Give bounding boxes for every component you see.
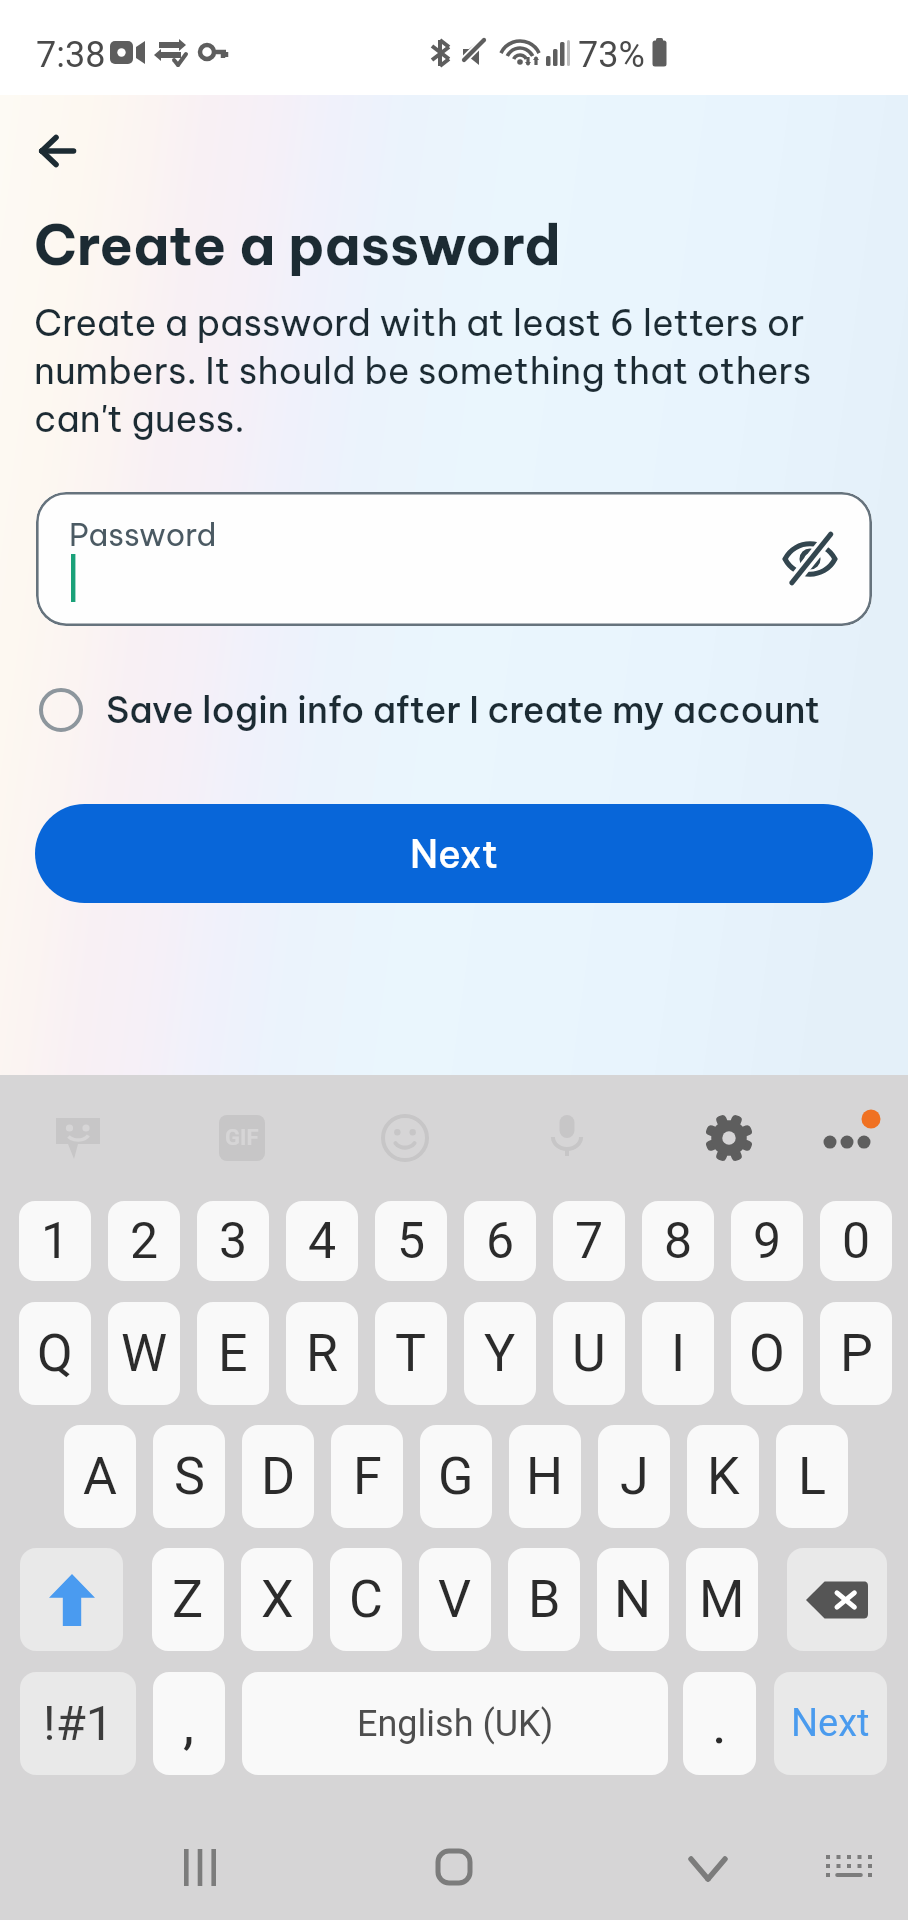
button[interactable]: P [820, 1302, 892, 1405]
button[interactable]: Stickers [44, 1104, 112, 1172]
button[interactable]: Emoji [371, 1104, 439, 1172]
button[interactable]: 5 [375, 1201, 447, 1281]
button[interactable]: 7 [553, 1201, 625, 1281]
button[interactable]: Recent apps [160, 1827, 240, 1907]
staticText: Create a password with at least 6 letter… [34, 299, 846, 442]
staticText: D [261, 1446, 296, 1507]
staticText: T [395, 1323, 427, 1384]
staticText: 0 [842, 1212, 871, 1271]
button[interactable]: !#1 [20, 1672, 136, 1775]
button[interactable]: I [642, 1302, 714, 1405]
staticText: Save login info after I create my accoun… [106, 687, 821, 733]
staticText: 2 [130, 1212, 159, 1271]
button[interactable]: 8 [642, 1201, 714, 1281]
staticText: 4 [308, 1212, 337, 1271]
staticText: Next [410, 830, 499, 878]
staticText: , [183, 1691, 195, 1757]
button[interactable]: Save login info after I create my accoun… [0, 676, 908, 744]
button[interactable]: 4 [286, 1201, 358, 1281]
button[interactable]: F [331, 1425, 403, 1528]
staticText: English (UK) [357, 1703, 554, 1745]
button[interactable]: T [375, 1302, 447, 1405]
button[interactable]: Y [464, 1302, 536, 1405]
staticText: L [798, 1446, 827, 1507]
button[interactable]: English (UK) [242, 1672, 668, 1775]
button[interactable]: Z [152, 1548, 224, 1651]
button[interactable]: V [419, 1548, 491, 1651]
button[interactable]: More options [812, 1104, 880, 1172]
button[interactable]: A [64, 1425, 136, 1528]
staticText: H [526, 1446, 564, 1507]
staticText: Next [791, 1701, 870, 1746]
button[interactable]: 2 [108, 1201, 180, 1281]
button[interactable]: H [509, 1425, 581, 1528]
button[interactable]: Voice input [533, 1104, 601, 1172]
button[interactable]: G [420, 1425, 492, 1528]
staticText: J [620, 1446, 649, 1507]
staticText: 1 [41, 1212, 70, 1271]
button[interactable]: 9 [731, 1201, 803, 1281]
button[interactable]: J [598, 1425, 670, 1528]
button[interactable]: Show password [774, 523, 846, 595]
staticText: R [306, 1323, 339, 1384]
button[interactable]: Next [774, 1672, 887, 1775]
staticText: Z [172, 1569, 204, 1630]
staticText: U [572, 1323, 606, 1384]
staticText: Y [484, 1323, 516, 1384]
staticText: S [174, 1446, 205, 1507]
staticText: 6 [486, 1212, 515, 1271]
button[interactable]: S [153, 1425, 225, 1528]
staticText: N [614, 1569, 652, 1630]
staticText: X [261, 1569, 294, 1630]
staticText: O [749, 1323, 785, 1384]
staticText: Password [69, 515, 217, 554]
button[interactable]: O [731, 1302, 803, 1405]
button[interactable]: Next [35, 804, 873, 903]
button[interactable]: D [242, 1425, 314, 1528]
button[interactable]: 1 [19, 1201, 91, 1281]
button[interactable]: Q [19, 1302, 91, 1405]
staticText: A [83, 1446, 117, 1507]
button[interactable]: X [241, 1548, 313, 1651]
staticText: 7 [575, 1212, 604, 1271]
staticText: Create a password [34, 210, 561, 280]
staticText: 7:38 [36, 34, 106, 76]
button[interactable]: 3 [197, 1201, 269, 1281]
button[interactable]: 6 [464, 1201, 536, 1281]
button[interactable]: . [683, 1672, 756, 1775]
staticText: !#1 [43, 1695, 114, 1752]
button[interactable]: Password [36, 492, 872, 626]
staticText: B [528, 1569, 561, 1630]
button[interactable]: E [197, 1302, 269, 1405]
staticText: Q [37, 1323, 73, 1384]
button[interactable]: C [330, 1548, 402, 1651]
button[interactable]: M [686, 1548, 758, 1651]
staticText: 73% [578, 34, 645, 76]
staticText: P [840, 1323, 873, 1384]
button[interactable]: R [286, 1302, 358, 1405]
staticText: 3 [219, 1212, 248, 1271]
button[interactable]: K [687, 1425, 759, 1528]
button[interactable]: Home [414, 1827, 494, 1907]
button[interactable]: Backspace [787, 1548, 887, 1651]
button[interactable]: Back [22, 116, 92, 186]
button[interactable]: W [108, 1302, 180, 1405]
button[interactable]: N [597, 1548, 669, 1651]
staticText: C [349, 1569, 383, 1630]
button[interactable]: Keyboard settings [695, 1104, 763, 1172]
staticText: GIF [225, 1125, 259, 1151]
button[interactable]: 0 [820, 1201, 892, 1281]
staticText: F [353, 1446, 382, 1507]
staticText: E [218, 1323, 248, 1384]
staticText: . [712, 1691, 727, 1757]
button[interactable]: , [153, 1672, 225, 1775]
button[interactable]: L [776, 1425, 848, 1528]
button[interactable]: Hide keyboard [668, 1829, 748, 1909]
staticText: V [438, 1569, 472, 1630]
button[interactable]: Change keyboard [809, 1829, 889, 1909]
button[interactable]: GIF [208, 1104, 276, 1172]
button[interactable]: B [508, 1548, 580, 1651]
button[interactable]: U [553, 1302, 625, 1405]
button[interactable]: Shift [20, 1548, 123, 1651]
staticText: W [121, 1323, 168, 1384]
